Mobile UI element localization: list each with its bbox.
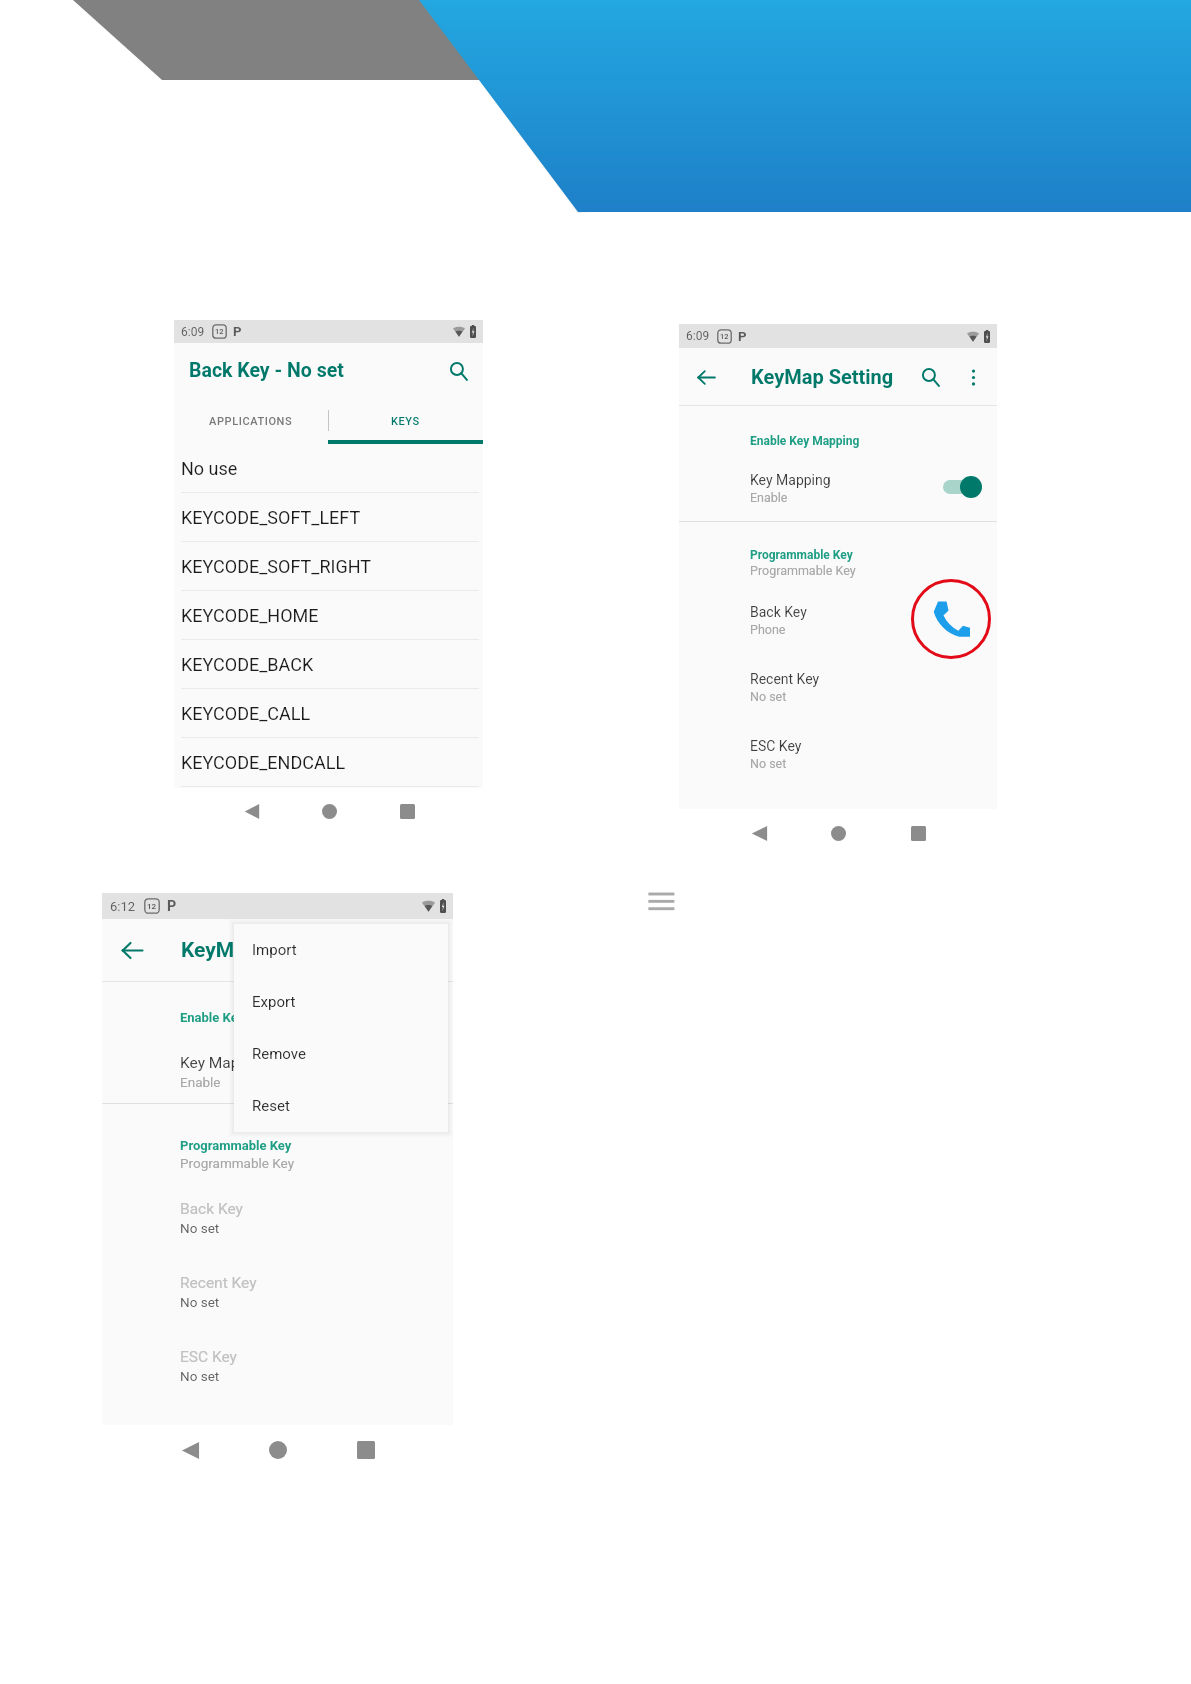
button[interactable]: Back Key [750,604,997,637]
staticText: Recent Key [750,671,820,687]
button[interactable]: Import [252,924,448,976]
staticText: KEYCODE_BACK [181,654,314,675]
staticText: P [167,898,177,915]
staticText: Enable [750,490,788,505]
button[interactable]: Home [823,818,853,848]
staticText: 6:09 [181,325,205,339]
staticText: No set [750,756,787,771]
button[interactable]: Home [314,796,344,826]
button[interactable] [942,476,982,498]
button[interactable]: Key Mapping [750,472,831,505]
staticText: Key Mapping [180,1054,270,1072]
staticText: Phone [750,622,786,637]
staticText: Enable Key Mapping [750,434,860,448]
button[interactable]: No use [174,444,483,493]
button[interactable]: Home [263,1435,293,1465]
button[interactable]: ESC Key [180,1348,453,1384]
button[interactable]: Recents [903,818,933,848]
button[interactable]: KEYCODE_CALL [174,689,483,738]
button[interactable]: KEYCODE_HOME [174,591,483,640]
button[interactable]: Recents [392,796,422,826]
staticText: Back Key [180,1200,243,1218]
staticText: No set [750,689,787,704]
staticText: Programmable Key [750,548,853,562]
button[interactable]: Reset [252,1080,448,1132]
button[interactable]: KEYCODE_SOFT_RIGHT [174,542,483,591]
staticText: Programmable Key [750,563,856,578]
staticText: ESC Key [750,738,802,754]
staticText: KeyMap Setting [181,938,331,963]
staticText: Import [252,941,297,959]
staticText: No set [180,1368,220,1384]
staticText: Remove [252,1045,306,1063]
button[interactable]: Back [744,818,774,848]
staticText: P [233,324,242,339]
button[interactable]: Menu [646,887,678,913]
button[interactable]: KEYS [328,398,483,444]
staticText: ESC Key [180,1348,237,1366]
staticText: KEYCODE_HOME [181,605,319,626]
button[interactable]: APPLICATIONS [174,398,328,444]
staticText: KEYCODE_SOFT_LEFT [181,507,361,528]
button[interactable]: KEYCODE_ENDCALL [174,738,483,787]
staticText: Programmable Key [180,1138,292,1153]
staticText: Enable Key Mapping [180,1010,299,1025]
button[interactable]: Back [237,796,267,826]
staticText: No use [181,458,238,479]
staticText: Recent Key [180,1274,257,1292]
staticText: No set [180,1220,220,1236]
button[interactable]: Recent Key [180,1274,453,1310]
button[interactable]: Recent Key [750,671,997,704]
staticText: Programmable Key [180,1155,295,1171]
button[interactable]: Remove [252,1028,448,1080]
staticText: KEYCODE_SOFT_RIGHT [181,556,371,577]
button[interactable]: Back [693,364,719,390]
staticText: 12 [720,332,729,341]
staticText: 6:09 [686,329,710,343]
button[interactable]: Recents [351,1435,381,1465]
button[interactable]: ESC Key [750,738,997,771]
staticText: Back Key [750,604,807,620]
staticText: P [738,329,747,344]
staticText: 12 [215,327,224,336]
button[interactable]: Search [917,364,943,390]
button[interactable]: KEYCODE_SOFT_LEFT [174,493,483,542]
button[interactable]: Back [175,1435,205,1465]
staticText: APPLICATIONS [209,415,293,428]
staticText: Key Mapping [750,472,831,488]
staticText: Export [252,993,296,1011]
button[interactable]: Back Key [180,1200,453,1236]
button[interactable]: KEYCODE_BACK [174,640,483,689]
button[interactable]: Back [118,936,146,964]
staticText: KEYCODE_ENDCALL [181,752,346,773]
staticText: KeyMap Setting [751,365,894,388]
staticText: Back Key - No set [189,359,344,382]
staticText: Enable [180,1074,221,1090]
staticText: No set [180,1294,220,1310]
button[interactable]: Export [252,976,448,1028]
staticText: KEYCODE_CALL [181,703,311,724]
staticText: Reset [252,1097,290,1115]
button[interactable]: Search [444,357,472,385]
staticText: 12 [147,902,157,911]
button[interactable]: More options [961,365,985,389]
staticText: KEYS [391,415,420,428]
staticText: 6:12 [110,899,136,914]
